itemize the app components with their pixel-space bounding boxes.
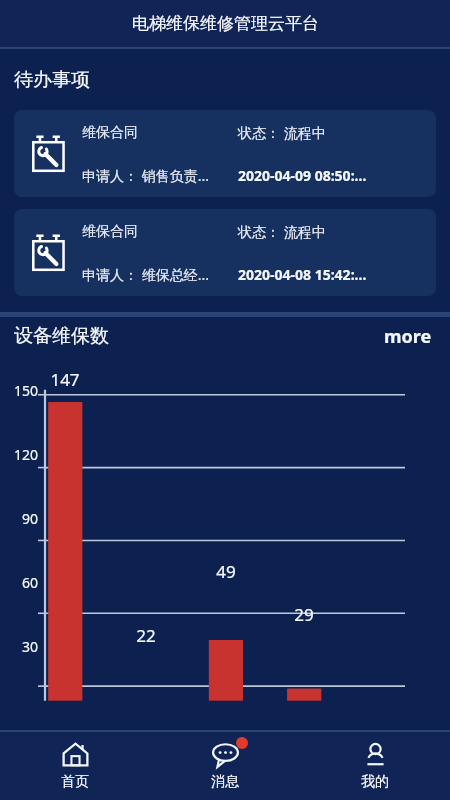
staticText: 150 [0,381,38,400]
staticText: 首页 [61,773,89,791]
staticText: more [384,324,432,349]
staticText: 29 [282,603,326,626]
button[interactable]: 我的 [300,732,450,800]
button[interactable]: 维保合同 [14,209,436,296]
button[interactable]: 首页 [0,732,150,800]
staticText: 49 [204,560,248,583]
staticText: 状态： 流程中 [238,222,426,241]
staticText: 22 [124,624,168,647]
staticText: 我的 [361,773,389,791]
other: 我的 [362,741,389,768]
staticText: 设备维保数 [14,324,109,348]
button[interactable]: 维保合同 [14,110,436,197]
staticText: 147 [43,368,87,391]
staticText: 30 [0,637,38,656]
staticText: 90 [0,509,38,528]
other: 消息 [212,741,239,768]
button[interactable]: more [380,321,436,352]
staticText: 维保合同 [82,124,238,142]
staticText: 120 [0,445,38,464]
staticText: 2020-04-08 15:42:... [238,265,426,284]
other: 首页 [62,741,89,768]
staticText: 2020-04-09 08:50:... [238,166,426,185]
staticText: 维保合同 [82,223,238,241]
staticText: 60 [0,573,38,592]
staticText: 电梯维保维修管理云平台 [132,13,319,34]
staticText: 状态： 流程中 [238,123,426,142]
staticText: 待办事项 [14,68,90,92]
staticText: 消息 [211,773,239,791]
staticText: 申请人： 销售负责... [82,166,238,185]
staticText: 申请人： 维保总经... [82,265,238,284]
button[interactable]: 消息 [150,732,300,800]
